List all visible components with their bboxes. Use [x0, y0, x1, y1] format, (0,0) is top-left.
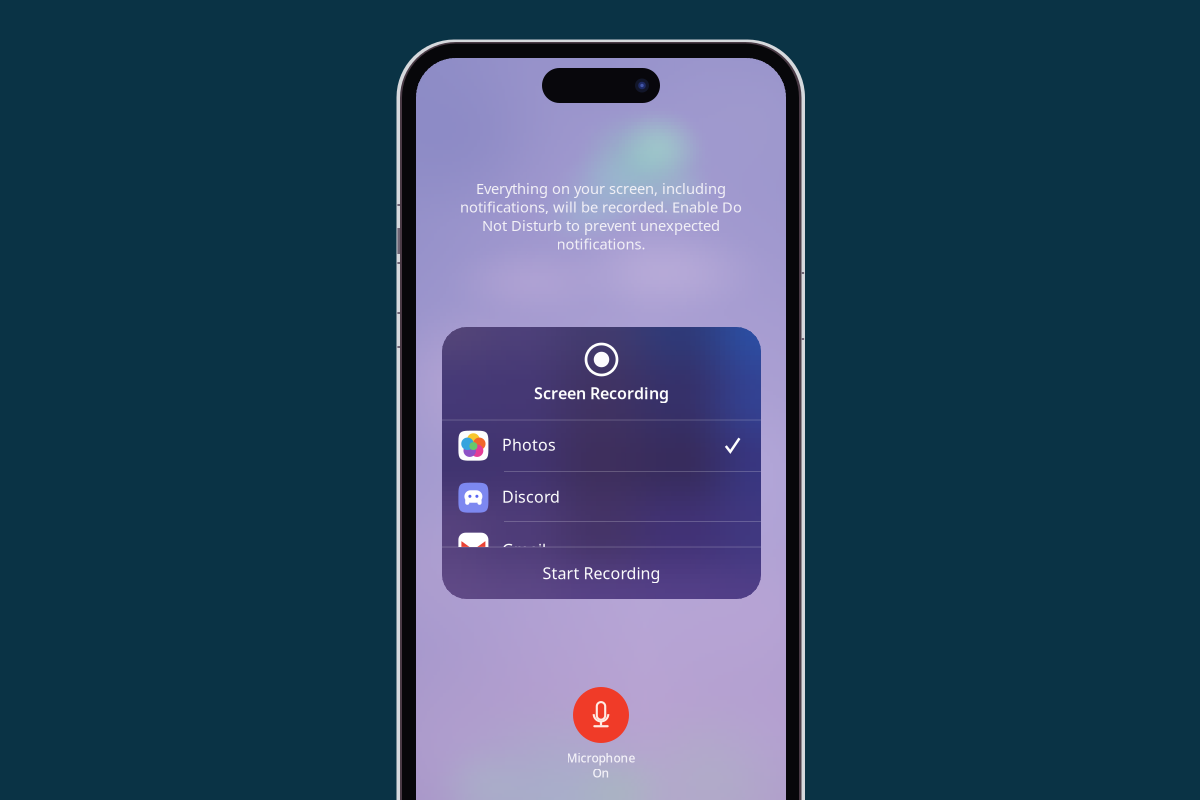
staticText: Everything on your screen, including	[476, 178, 726, 198]
staticText: notifications, will be recorded. Enable …	[460, 197, 742, 216]
staticText: Discord	[502, 486, 560, 507]
staticText: Microphone	[566, 750, 635, 766]
button[interactable]: Discord	[442, 472, 761, 521]
staticText: Not Disturb to prevent unexpected	[482, 215, 720, 235]
staticText: Photos	[502, 434, 556, 455]
button[interactable]: Gmail	[442, 522, 761, 547]
staticText: On	[592, 765, 609, 781]
staticText: Gmail	[502, 539, 546, 560]
staticText: notifications.	[556, 234, 645, 253]
button[interactable]: Photos	[442, 420, 761, 471]
staticText: Start Recording	[542, 562, 660, 584]
button[interactable]: Microphone On	[573, 687, 629, 743]
staticText: Screen Recording	[534, 382, 669, 404]
button[interactable]: Start Recording	[442, 547, 761, 599]
